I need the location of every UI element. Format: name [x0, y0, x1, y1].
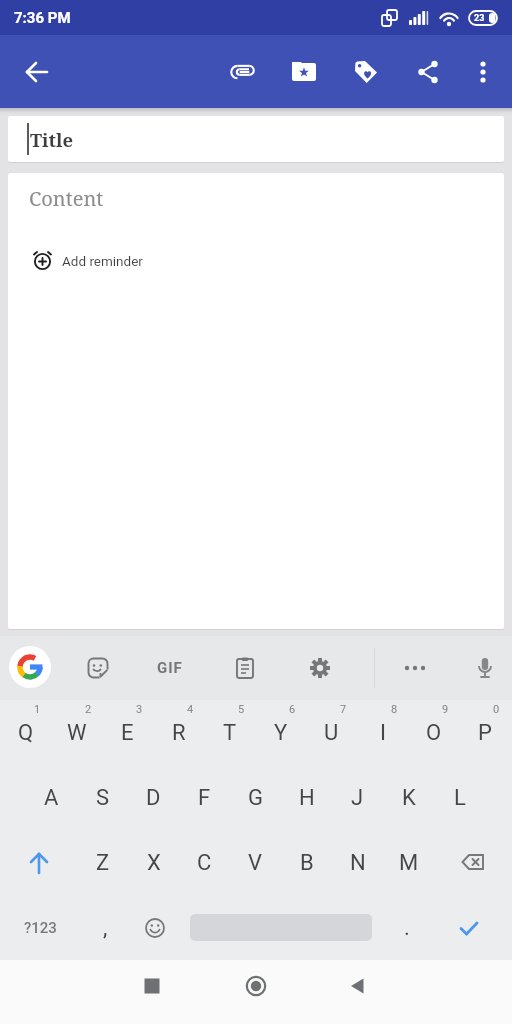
button[interactable] — [9, 646, 51, 688]
button[interactable] — [232, 962, 280, 1010]
button[interactable] — [334, 962, 382, 1010]
button[interactable] — [434, 830, 512, 895]
staticText: , — [103, 915, 108, 941]
staticText: I — [380, 720, 386, 746]
button[interactable] — [0, 830, 77, 895]
button[interactable]: G — [230, 765, 281, 830]
staticText: 7 — [340, 703, 347, 716]
staticText: J — [351, 785, 364, 811]
button[interactable]: , — [80, 895, 130, 960]
staticText: Title — [30, 127, 74, 152]
button[interactable] — [211, 35, 273, 108]
button[interactable]: N — [332, 830, 383, 895]
staticText: Add reminder — [62, 253, 143, 269]
button[interactable]: P — [459, 700, 510, 765]
staticText: F — [198, 785, 211, 811]
button[interactable]: S — [77, 765, 128, 830]
button[interactable]: GIF — [144, 644, 196, 692]
staticText: X — [147, 850, 161, 876]
staticText: R — [172, 720, 186, 746]
button[interactable]: W — [51, 700, 102, 765]
button[interactable] — [397, 35, 459, 108]
staticText: 4 — [187, 703, 194, 716]
button[interactable] — [182, 895, 380, 960]
button[interactable]: B — [281, 830, 332, 895]
staticText: 9 — [442, 703, 449, 716]
button[interactable] — [296, 644, 344, 692]
staticText: L — [454, 785, 466, 811]
button[interactable]: L — [434, 765, 485, 830]
button[interactable] — [74, 644, 122, 692]
button[interactable] — [130, 895, 180, 960]
button[interactable]: X — [128, 830, 179, 895]
button[interactable]: J — [332, 765, 383, 830]
button[interactable] — [9, 35, 65, 108]
button[interactable]: ?123 — [2, 895, 78, 960]
button[interactable]: M — [383, 830, 434, 895]
button[interactable]: I — [357, 700, 408, 765]
staticText: 8 — [391, 703, 398, 716]
button[interactable] — [273, 35, 335, 108]
staticText: G — [248, 785, 263, 811]
button[interactable]: O — [408, 700, 459, 765]
button[interactable]: Content — [8, 173, 504, 629]
staticText: 6 — [289, 703, 296, 716]
staticText: H — [299, 785, 315, 811]
staticText: M — [399, 850, 419, 876]
button[interactable]: C — [179, 830, 230, 895]
staticText: B — [300, 850, 314, 876]
staticText: U — [324, 720, 339, 746]
button[interactable] — [335, 35, 397, 108]
staticText: D — [146, 785, 161, 811]
staticText: . — [404, 915, 410, 941]
button[interactable]: H — [281, 765, 332, 830]
button[interactable]: T — [204, 700, 255, 765]
staticText: N — [350, 850, 366, 876]
staticText: 2 — [85, 703, 92, 716]
staticText: 0 — [493, 703, 500, 716]
staticText: 5 — [238, 703, 245, 716]
button[interactable]: D — [128, 765, 179, 830]
button[interactable]: Title — [8, 116, 504, 162]
button[interactable]: V — [230, 830, 281, 895]
staticText: C — [197, 850, 212, 876]
button[interactable]: R — [153, 700, 204, 765]
staticText: GIF — [157, 659, 183, 677]
staticText: Q — [18, 720, 34, 746]
button[interactable] — [461, 644, 509, 692]
button[interactable]: U — [306, 700, 357, 765]
staticText: P — [478, 720, 492, 746]
button[interactable]: Y — [255, 700, 306, 765]
button[interactable]: Add reminder — [32, 250, 143, 271]
button[interactable]: . — [382, 895, 432, 960]
staticText: Y — [274, 720, 288, 746]
staticText: T — [223, 720, 237, 746]
button[interactable] — [391, 644, 439, 692]
staticText: ?123 — [24, 919, 57, 937]
staticText: 3 — [136, 703, 143, 716]
staticText: 1 — [34, 703, 41, 716]
staticText: V — [248, 850, 263, 876]
button[interactable]: Q — [0, 700, 51, 765]
button[interactable]: Z — [77, 830, 128, 895]
button[interactable] — [459, 35, 507, 108]
button[interactable]: K — [383, 765, 434, 830]
button[interactable] — [221, 644, 269, 692]
staticText: W — [67, 720, 87, 746]
button[interactable]: F — [179, 765, 230, 830]
staticText: A — [44, 785, 59, 811]
button[interactable]: A — [26, 765, 77, 830]
staticText: E — [121, 720, 134, 746]
staticText: Content — [29, 185, 104, 212]
staticText: 23 — [474, 13, 485, 24]
button[interactable] — [128, 962, 176, 1010]
button[interactable] — [434, 895, 504, 960]
staticText: Z — [96, 850, 110, 876]
staticText: S — [96, 785, 110, 811]
staticText: 7:36 PM — [14, 9, 71, 27]
staticText: K — [402, 785, 416, 811]
button[interactable]: E — [102, 700, 153, 765]
staticText: O — [426, 720, 442, 746]
